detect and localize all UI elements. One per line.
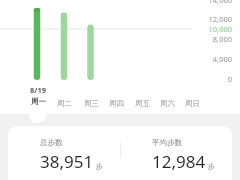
button[interactable]: 8/19 — [24, 85, 52, 106]
staticText: 步 — [96, 162, 103, 171]
button[interactable]: 周五 — [130, 99, 154, 108]
staticText: 周日 — [185, 99, 200, 108]
staticText: 12,984 — [152, 150, 206, 173]
staticText: 4,000 — [212, 54, 232, 64]
staticText: 周一 — [31, 97, 46, 106]
button[interactable]: 总步数 — [8, 126, 232, 180]
staticText: 12,000 — [208, 14, 232, 24]
staticText: 步 — [208, 162, 215, 171]
staticText: 0 — [227, 74, 232, 84]
staticText: 平均步数 — [152, 138, 182, 147]
staticText: 周六 — [160, 99, 175, 108]
staticText: 8,000 — [212, 34, 232, 44]
staticText: 14,000 — [208, 0, 232, 5]
button[interactable]: 周六 — [155, 99, 179, 108]
staticText: 10,000 — [208, 24, 232, 34]
staticText: 8/19 — [30, 85, 46, 95]
button[interactable]: 周三 — [79, 99, 103, 108]
button[interactable]: 周二 — [52, 99, 76, 108]
staticText: 周三 — [84, 99, 99, 108]
staticText: 总步数 — [40, 138, 63, 147]
staticText: 38,951 — [40, 150, 94, 173]
other: Selected day indicator — [29, 106, 46, 123]
button[interactable]: 周四 — [104, 99, 128, 108]
staticText: 周二 — [57, 99, 72, 108]
staticText: 周四 — [109, 99, 124, 108]
staticText: 周五 — [135, 99, 150, 108]
button[interactable]: 周日 — [180, 99, 204, 108]
